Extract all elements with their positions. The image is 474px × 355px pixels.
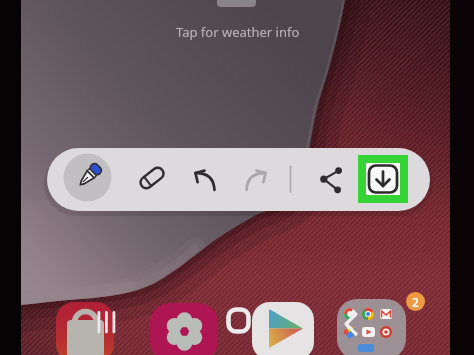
- button[interactable]: Tap for weather info: [164, 22, 312, 41]
- button[interactable]: [358, 155, 408, 203]
- button[interactable]: [337, 299, 406, 355]
- button[interactable]: [95, 309, 119, 336]
- button[interactable]: [150, 303, 218, 355]
- staticText: Tap for weather info: [176, 23, 300, 41]
- button[interactable]: [252, 302, 314, 355]
- button[interactable]: [312, 160, 348, 196]
- button[interactable]: [63, 153, 112, 202]
- button[interactable]: [240, 160, 276, 196]
- button[interactable]: [226, 306, 252, 334]
- button[interactable]: [340, 309, 362, 339]
- button[interactable]: [134, 160, 170, 196]
- button[interactable]: [185, 160, 221, 196]
- button[interactable]: [56, 302, 114, 355]
- staticText: 2: [412, 294, 419, 310]
